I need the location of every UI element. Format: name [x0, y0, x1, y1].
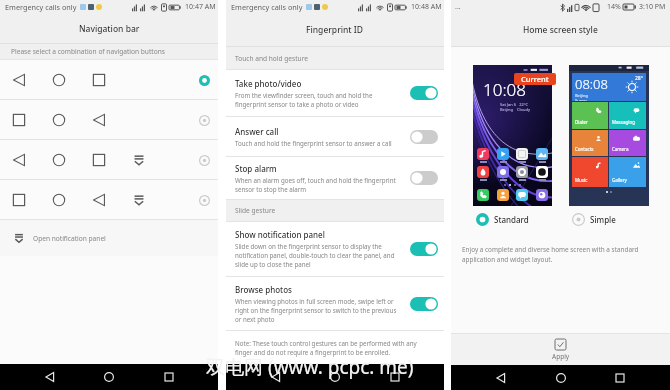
staticText: Current: [521, 74, 549, 84]
staticText: 08:08: [575, 75, 608, 93]
staticText: Touch and hold gesture: [235, 54, 308, 63]
button[interactable]: Show notification panel: [226, 222, 444, 276]
button[interactable]: Standard: [476, 213, 572, 226]
staticText: Sunny: [575, 98, 587, 101]
staticText: 28°: [635, 75, 643, 82]
button[interactable]: Turn on: [410, 171, 438, 185]
button[interactable]: Recents: [159, 367, 179, 387]
staticText: Fingerprint ID: [306, 24, 364, 36]
button[interactable]: Turn off: [410, 242, 438, 256]
button[interactable]: Apply: [451, 334, 670, 365]
staticText: 10:48 AM: [411, 2, 442, 12]
staticText: Touch and hold the fingerprint sensor to…: [235, 139, 392, 147]
button[interactable]: Stop alarm: [226, 157, 444, 199]
button[interactable]: Home: [551, 368, 571, 388]
button[interactable]: Browse photos: [226, 277, 444, 330]
staticText: Music: [575, 177, 588, 183]
staticText: Standard: [494, 214, 529, 225]
button[interactable]: [0, 180, 218, 220]
staticText: Show notification panel: [235, 229, 325, 240]
button[interactable]: Turn on: [410, 130, 438, 144]
button[interactable]: [0, 100, 218, 140]
staticText: Stop alarm: [235, 163, 277, 174]
staticText: Navigation bar: [79, 23, 140, 35]
button[interactable]: Home: [325, 367, 345, 387]
button[interactable]: [0, 60, 218, 100]
staticText: Emergency calls only: [5, 2, 77, 12]
staticText: 3:10 PM: [639, 2, 666, 12]
staticText: Slide down on the fingerprint sensor to …: [235, 242, 395, 269]
staticText: Answer call: [235, 126, 279, 137]
button[interactable]: Answer call: [226, 117, 444, 156]
staticText: Note: These touch control gestures can b…: [235, 339, 417, 357]
staticText: Gallery: [612, 177, 627, 183]
staticText: Simple: [590, 214, 616, 225]
staticText: 10:08: [483, 78, 526, 101]
staticText: 10:47 AM: [185, 2, 216, 12]
button[interactable]: Music: [572, 157, 608, 187]
button[interactable]: Back: [40, 367, 60, 387]
staticText: Apply: [552, 352, 570, 361]
button[interactable]: Contacts: [572, 130, 608, 156]
button[interactable]: Messaging: [609, 102, 646, 129]
staticText: When an alarm goes off, touch and hold t…: [235, 176, 396, 194]
button[interactable]: Gallery: [609, 157, 646, 187]
staticText: 14%: [607, 2, 621, 12]
staticText: Please select a combination of navigatio…: [11, 47, 165, 56]
button[interactable]: Simple: [572, 213, 616, 226]
button[interactable]: Camera: [609, 130, 646, 156]
staticText: From the viewfinder screen, touch and ho…: [235, 91, 373, 109]
staticText: Messaging: [612, 119, 635, 125]
staticText: 双电网 (www. pcpc. me): [206, 354, 414, 380]
button[interactable]: Home: [99, 367, 119, 387]
button[interactable]: Back: [491, 368, 511, 388]
button[interactable]: Recents: [610, 368, 630, 388]
button[interactable]: Turn off: [410, 297, 438, 311]
staticText: Take photo/video: [235, 78, 302, 89]
button[interactable]: Recents: [385, 367, 405, 387]
staticText: Sat Jan 6 22°C: [500, 102, 528, 107]
button[interactable]: Dialer: [572, 102, 608, 129]
button[interactable]: Open notification panel: [12, 220, 218, 256]
staticText: ...: [455, 2, 461, 12]
button[interactable]: Back: [266, 367, 286, 387]
staticText: Dialer: [575, 119, 588, 125]
staticText: Slide gesture: [235, 206, 276, 215]
staticText: When viewing photos in full screen mode,…: [235, 297, 397, 324]
staticText: Contacts: [575, 146, 594, 152]
button[interactable]: Take photo/video: [226, 70, 444, 116]
staticText: Emergency calls only: [231, 2, 303, 12]
button[interactable]: Turn off: [410, 86, 438, 100]
staticText: Enjoy a complete and diverse home screen…: [462, 245, 639, 264]
staticText: Open notification panel: [33, 234, 106, 243]
staticText: Camera: [612, 146, 629, 152]
staticText: Beijing: [575, 93, 588, 98]
staticText: Beijing Cloudy: [500, 107, 530, 112]
staticText: Home screen style: [523, 24, 598, 36]
staticText: Browse photos: [235, 284, 292, 295]
button[interactable]: [0, 140, 218, 180]
